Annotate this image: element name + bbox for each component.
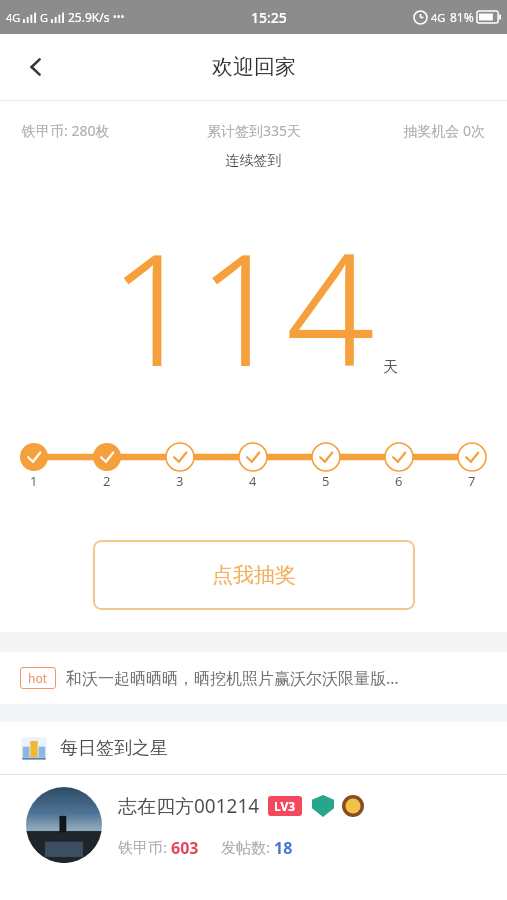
staticText: 25.9K/s: [68, 9, 110, 25]
staticText: 天: [383, 358, 398, 377]
staticText: 铁甲币:: [118, 837, 171, 857]
staticText: 81%: [450, 9, 474, 25]
staticText: •••: [113, 10, 125, 24]
staticText: 4G: [6, 10, 21, 25]
staticText: 点我抽奖: [212, 562, 296, 588]
staticText: 114: [109, 200, 375, 411]
staticText: 7: [468, 472, 476, 490]
staticText: 和沃一起晒晒晒，晒挖机照片赢沃尔沃限量版…: [66, 667, 399, 689]
staticText: 4G: [431, 10, 446, 25]
staticText: 每日签到之星: [60, 737, 168, 760]
staticText: hot: [28, 670, 48, 686]
button[interactable]: Back: [12, 43, 60, 91]
staticText: 发帖数:: [221, 837, 274, 857]
staticText: 4: [249, 472, 257, 490]
staticText: G: [40, 10, 49, 25]
staticText: 铁甲币: 280枚: [22, 121, 177, 140]
button[interactable]: 点我抽奖: [93, 540, 415, 610]
staticText: 连续签到: [0, 152, 507, 170]
staticText: 2: [103, 472, 111, 490]
staticText: 累计签到335天: [177, 121, 331, 140]
staticText: 志在四方001214: [118, 793, 260, 819]
staticText: LV3: [274, 798, 296, 814]
button[interactable]: hot: [0, 652, 507, 704]
staticText: 603: [171, 837, 199, 859]
button[interactable]: 志在四方001214: [0, 775, 507, 863]
staticText: 18: [274, 837, 293, 859]
staticText: 6: [395, 472, 403, 490]
staticText: 欢迎回家: [212, 54, 296, 80]
staticText: 5: [322, 472, 330, 490]
staticText: 15:25: [251, 8, 287, 27]
staticText: 3: [176, 472, 184, 490]
staticText: 抽奖机会 0次: [331, 121, 485, 140]
staticText: 1: [30, 472, 38, 490]
